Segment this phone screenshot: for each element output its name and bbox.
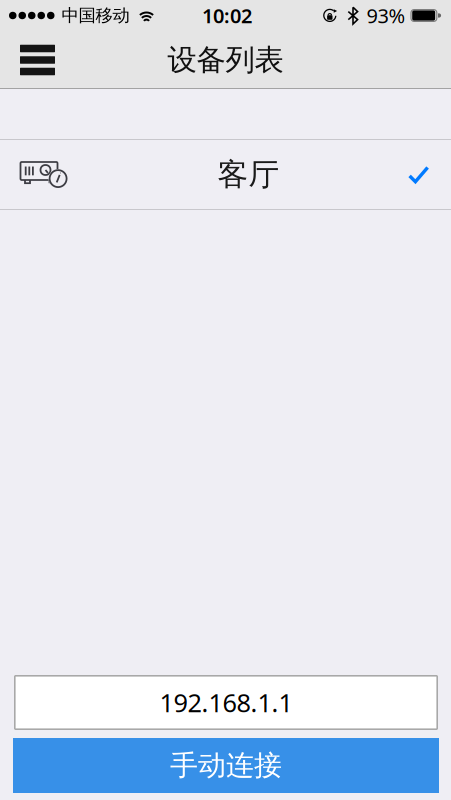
staticText: 手动连接: [170, 748, 282, 783]
button[interactable]: 手动连接: [0, 738, 451, 793]
button[interactable]: 192.168.1.1: [0, 675, 451, 730]
staticText: 客厅: [217, 156, 279, 193]
staticText: 设备列表: [167, 42, 283, 78]
staticText: 中国移动: [61, 5, 129, 26]
button[interactable]: 客厅: [0, 140, 451, 209]
staticText: 192.168.1.1: [159, 686, 292, 719]
staticText: 10:02: [202, 2, 252, 29]
staticText: 93%: [366, 2, 405, 29]
button[interactable]: Menu: [0, 32, 73, 88]
